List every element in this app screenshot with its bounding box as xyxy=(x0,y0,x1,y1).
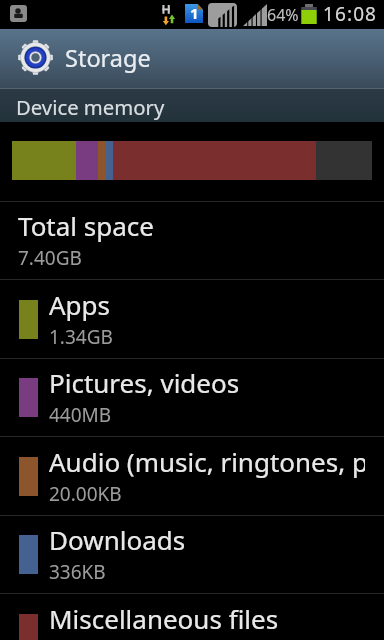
staticText: 64% xyxy=(267,4,299,26)
staticText: 1.34GB xyxy=(49,324,113,350)
staticText: 16:08 xyxy=(323,1,378,27)
staticText: Downloads xyxy=(49,522,186,557)
staticText: Device memory xyxy=(16,93,165,121)
staticText: 20.00KB xyxy=(49,481,122,507)
staticText: Audio (music, ringtones, podcasts) xyxy=(49,444,365,479)
button[interactable]: Downloads xyxy=(0,516,384,593)
button[interactable]: Miscellaneous files xyxy=(0,594,384,640)
staticText: 440MB xyxy=(49,402,112,428)
staticText: Miscellaneous files xyxy=(49,601,279,636)
button[interactable]: Total space xyxy=(0,202,384,279)
staticText: Storage xyxy=(65,42,151,74)
other: Settings xyxy=(18,40,53,75)
staticText: 336KB xyxy=(49,559,106,585)
staticText: Apps xyxy=(49,287,111,322)
button[interactable]: Audio (music, ringtones, podcasts) xyxy=(0,437,384,515)
button[interactable]: Pictures, videos xyxy=(0,359,384,436)
button[interactable]: Apps xyxy=(0,280,384,358)
button[interactable]: Device memory xyxy=(0,88,384,122)
staticText: Total space xyxy=(18,208,154,243)
staticText: 1 xyxy=(190,3,199,22)
button[interactable]: Settings xyxy=(0,29,384,88)
staticText: Pictures, videos xyxy=(49,365,240,400)
staticText: 7.40GB xyxy=(18,245,82,271)
